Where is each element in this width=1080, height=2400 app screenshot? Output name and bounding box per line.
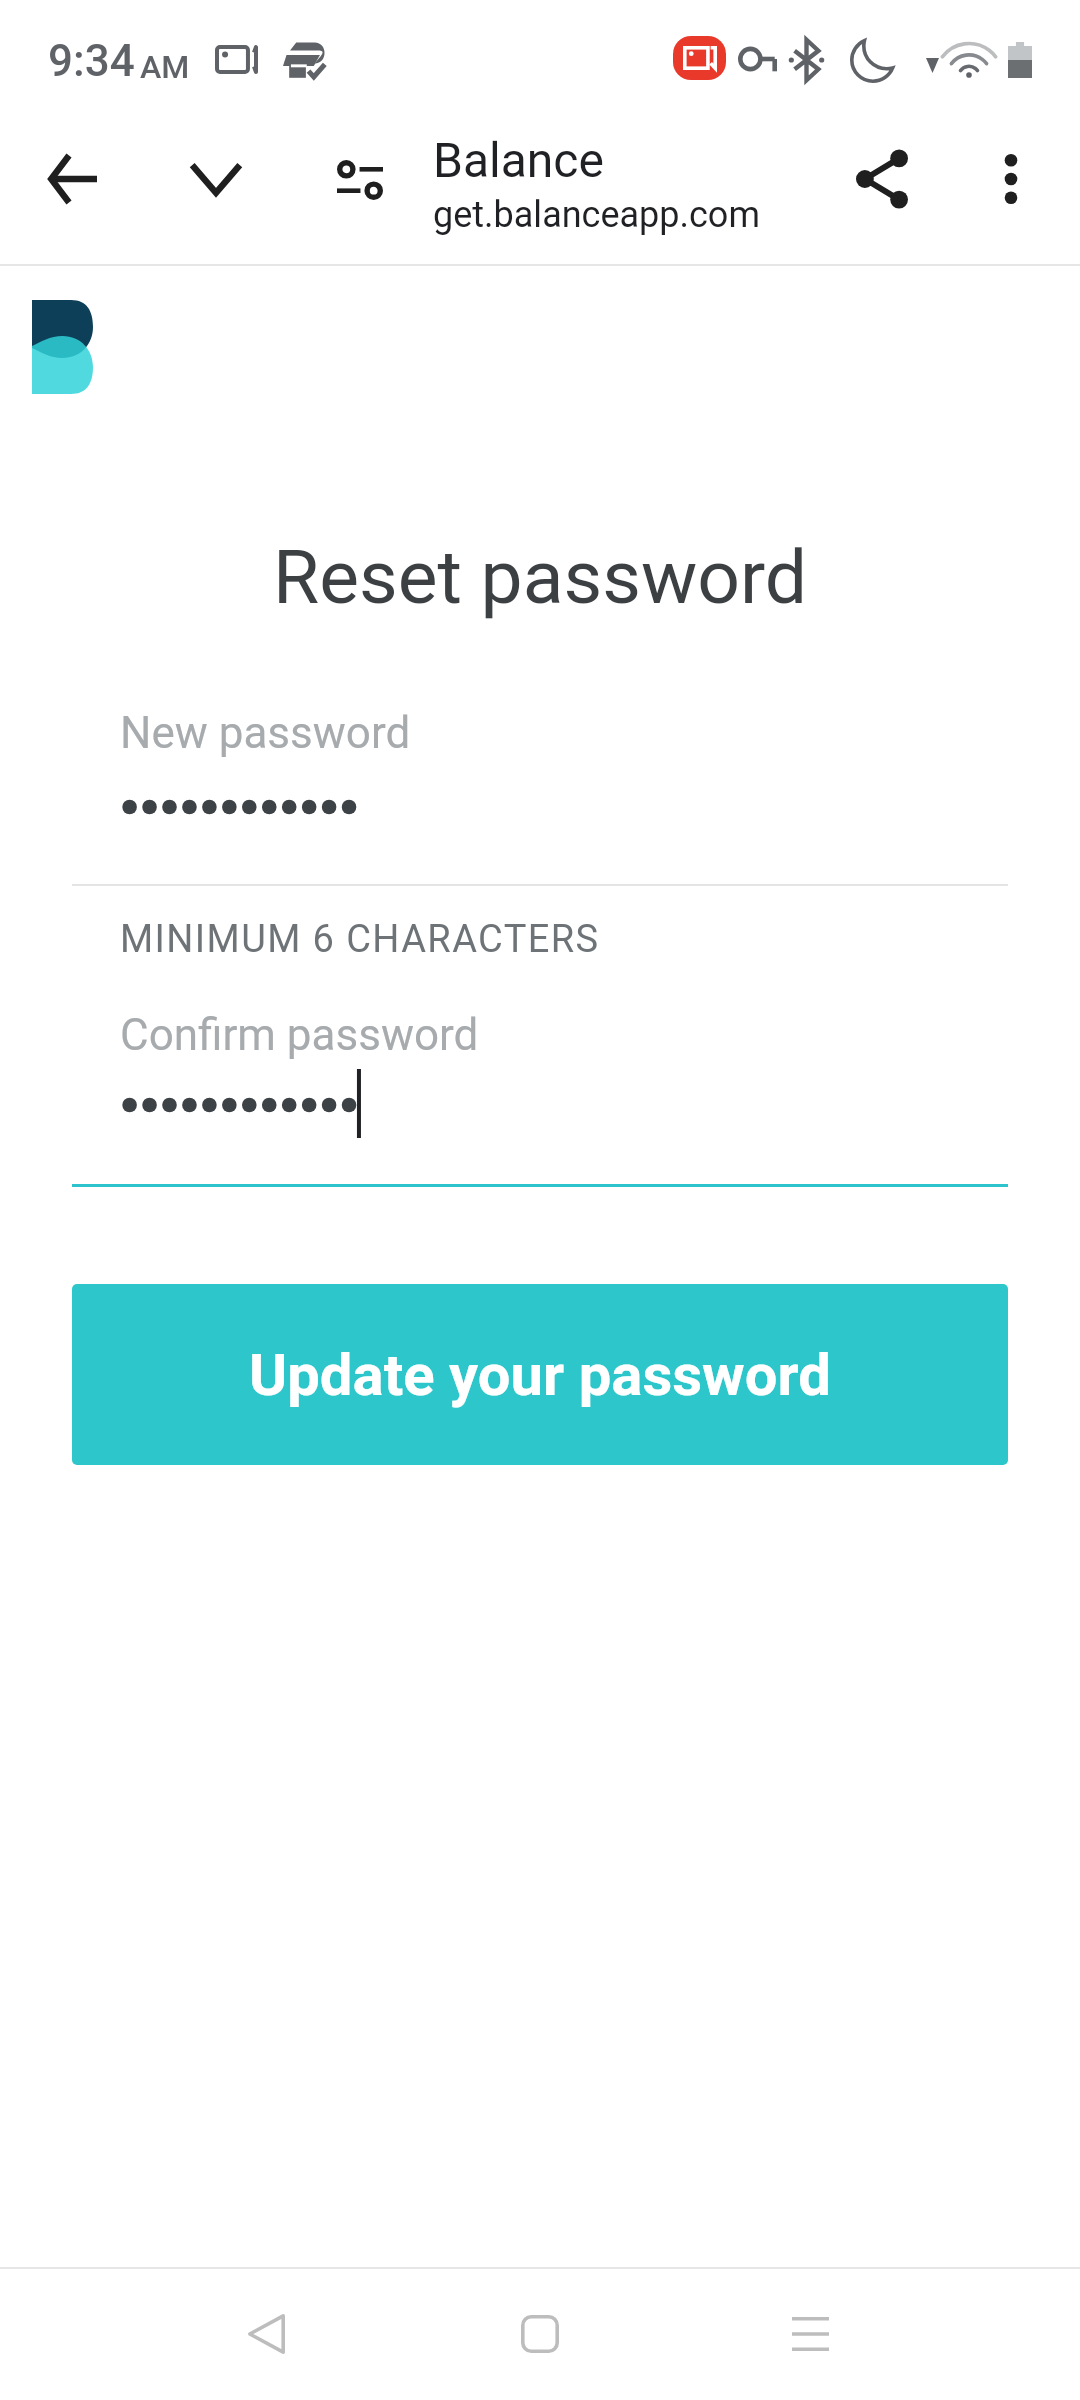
button[interactable]: Share [834,131,930,227]
button[interactable]: New password field [72,690,1008,885]
button[interactable]: Recent apps [762,2286,858,2382]
button[interactable]: Back [24,131,120,227]
button[interactable]: Home [492,2286,588,2382]
staticText: Update your password [249,1341,831,1409]
staticText: AM [140,48,190,86]
staticText: New password [120,707,411,759]
button[interactable]: More options [963,131,1059,227]
staticText: Reset password [0,533,1080,621]
staticText: Confirm password [120,1009,479,1061]
staticText: get.balanceapp.com [433,194,760,236]
staticText: Balance [433,132,604,188]
button[interactable]: Back [218,2286,314,2382]
button[interactable]: Update your password [72,1284,1008,1465]
button[interactable]: Confirm password field [72,990,1008,1187]
staticText: 9:34 [48,35,135,87]
button[interactable]: Collapse [168,131,264,227]
staticText: MINIMUM 6 CHARACTERS [120,917,600,962]
button[interactable]: Balance [420,120,820,250]
button[interactable]: Page info [312,131,408,227]
